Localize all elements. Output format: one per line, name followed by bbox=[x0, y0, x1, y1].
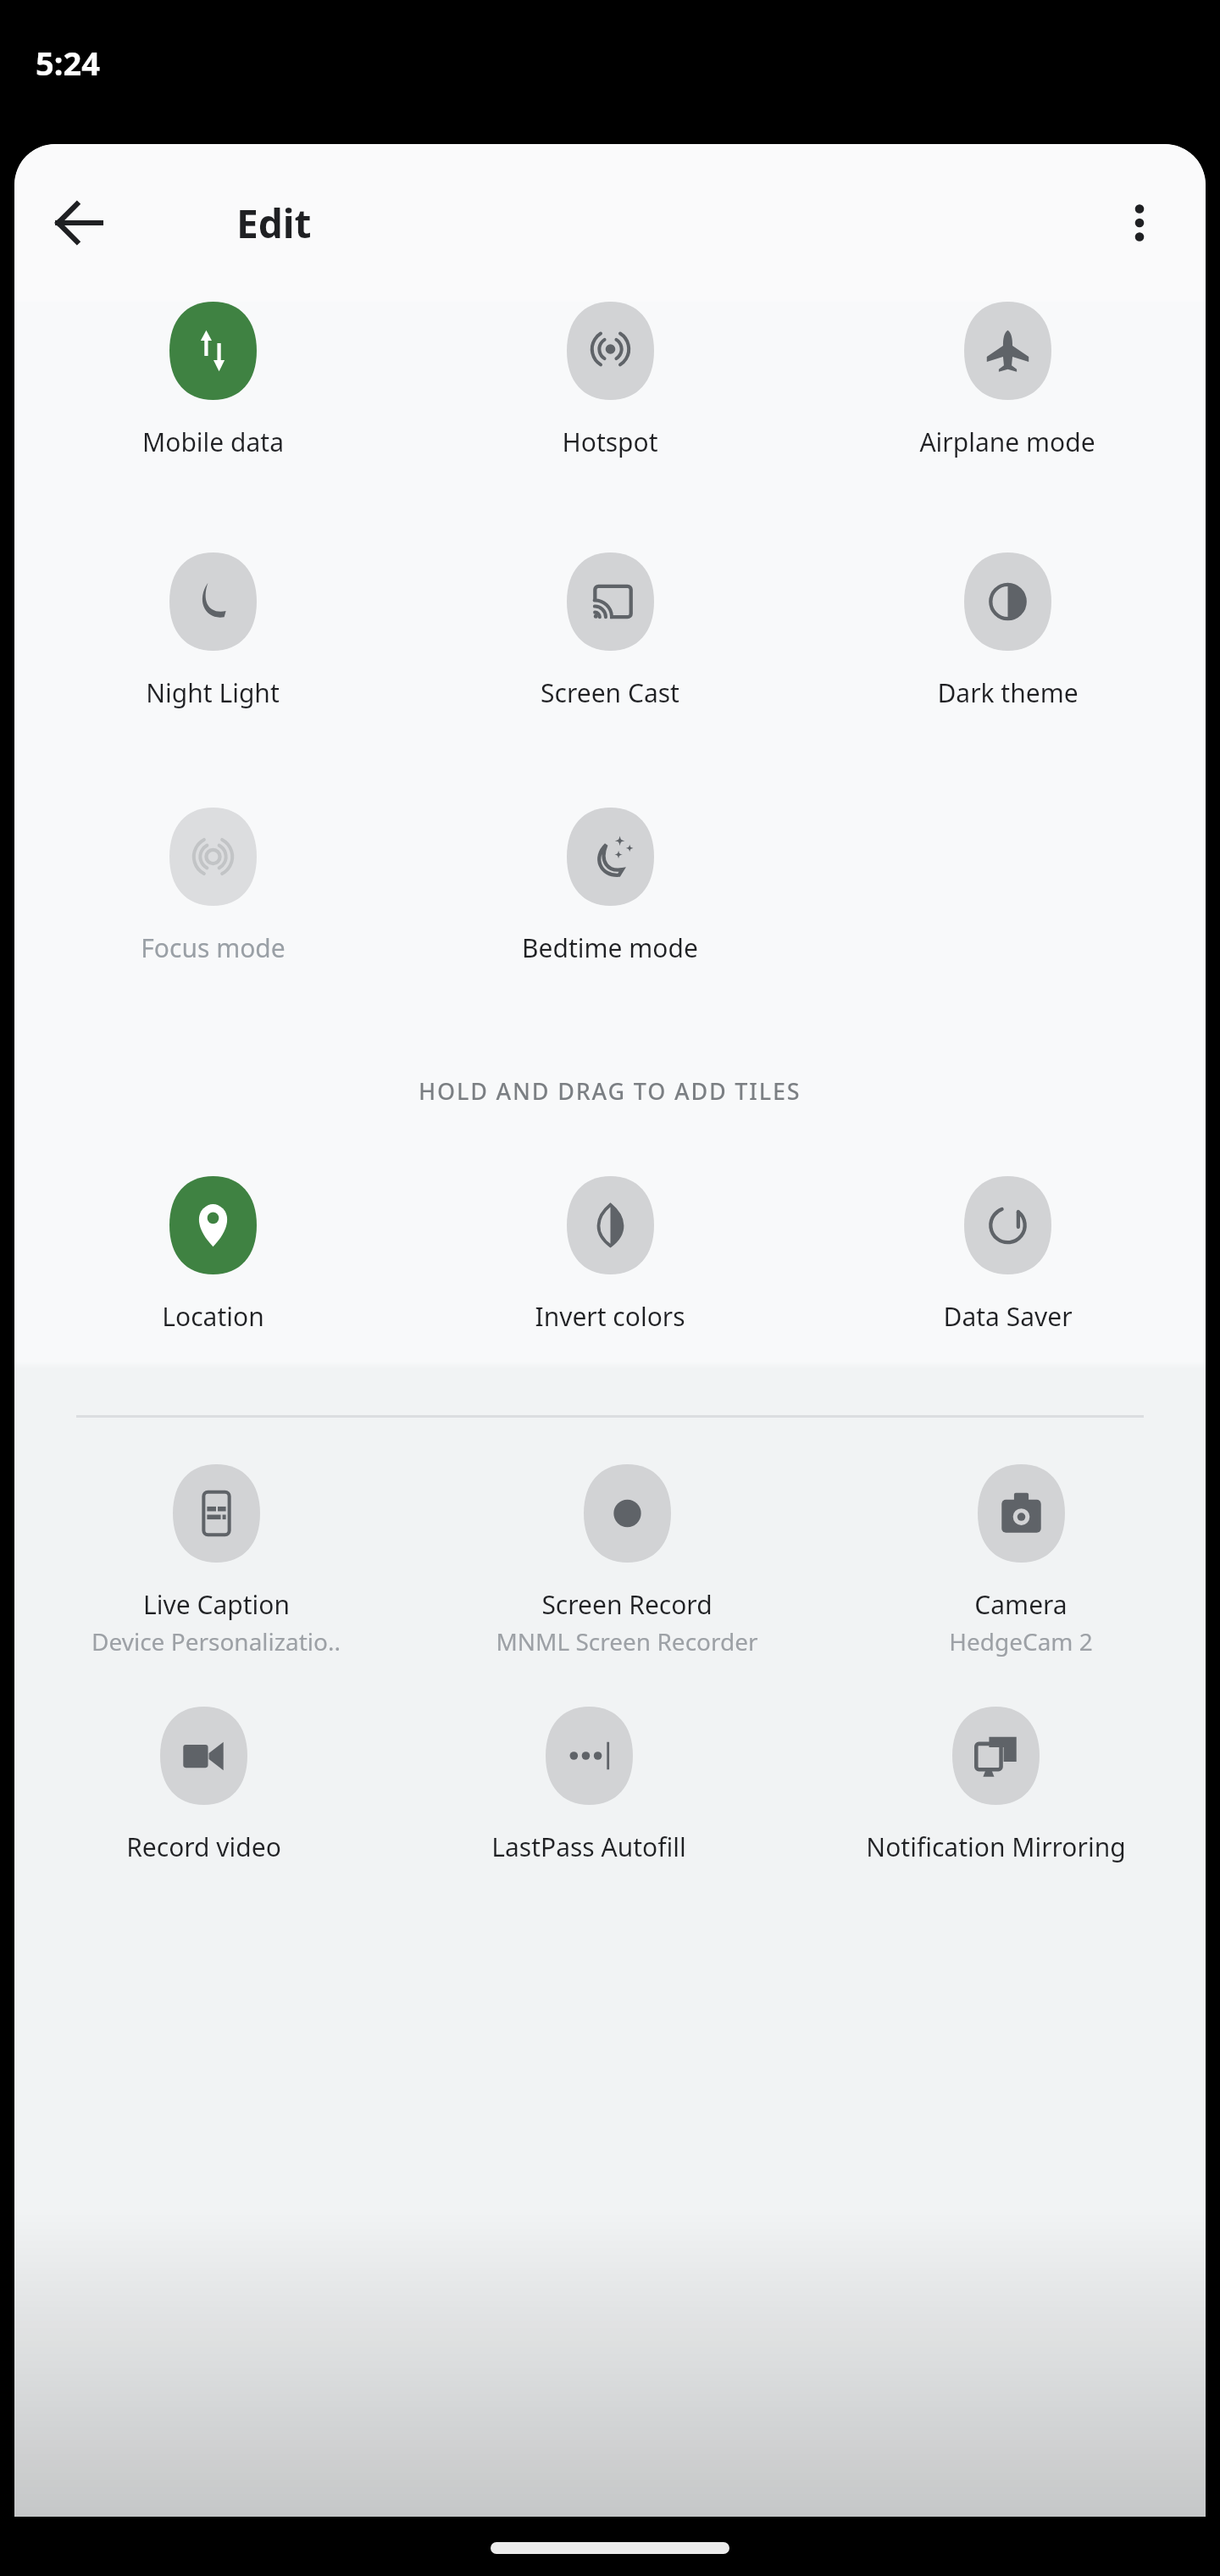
button[interactable]: LastPass Autofill bbox=[402, 1707, 775, 1864]
button[interactable]: Night Light bbox=[35, 552, 391, 710]
button[interactable]: Screen Record bbox=[432, 1464, 822, 1657]
staticText: Bedtime mode bbox=[522, 930, 698, 965]
staticText: Hotspot bbox=[562, 425, 658, 459]
staticText: Screen Record bbox=[541, 1587, 713, 1622]
button[interactable]: Focus mode bbox=[35, 808, 391, 965]
staticText: Device Personalizatio.. bbox=[91, 1625, 341, 1657]
button[interactable]: Back bbox=[33, 177, 125, 269]
staticText: Edit bbox=[236, 197, 312, 250]
staticText: Camera bbox=[974, 1587, 1067, 1622]
button[interactable]: Invert colors bbox=[432, 1176, 788, 1334]
button[interactable]: Location bbox=[35, 1176, 391, 1334]
staticText: Dark theme bbox=[937, 675, 1079, 710]
staticText: 5:24 bbox=[36, 41, 100, 85]
staticText: Notification Mirroring bbox=[866, 1829, 1126, 1864]
button[interactable]: Mobile data bbox=[35, 302, 391, 459]
staticText: HOLD AND DRAG TO ADD TILES bbox=[419, 1075, 801, 1107]
button[interactable]: Dark theme bbox=[829, 552, 1185, 710]
staticText: Live Caption bbox=[143, 1587, 290, 1622]
button[interactable]: Notification Mirroring bbox=[796, 1707, 1195, 1864]
staticText: Screen Cast bbox=[541, 675, 679, 710]
staticText: Night Light bbox=[146, 675, 280, 710]
button[interactable]: Airplane mode bbox=[829, 302, 1185, 459]
staticText: LastPass Autofill bbox=[491, 1829, 686, 1864]
staticText: Record video bbox=[126, 1829, 281, 1864]
button[interactable]: Live Caption bbox=[30, 1464, 402, 1657]
staticText: Data Saver bbox=[943, 1299, 1073, 1334]
button[interactable]: More options bbox=[1094, 177, 1185, 269]
staticText: MNML Screen Recorder bbox=[496, 1625, 758, 1657]
button[interactable]: Data Saver bbox=[829, 1176, 1185, 1334]
button[interactable]: Record video bbox=[25, 1707, 381, 1864]
staticText: Focus mode bbox=[141, 930, 286, 965]
staticText: Airplane mode bbox=[919, 425, 1095, 459]
button[interactable]: Bedtime mode bbox=[432, 808, 788, 965]
staticText: Location bbox=[162, 1299, 264, 1334]
staticText: HedgeCam 2 bbox=[949, 1625, 1093, 1657]
button[interactable]: Screen Cast bbox=[432, 552, 788, 710]
staticText: Invert colors bbox=[535, 1299, 685, 1334]
staticText: Mobile data bbox=[142, 425, 284, 459]
button[interactable]: Camera bbox=[851, 1464, 1190, 1657]
button[interactable]: Hotspot bbox=[432, 302, 788, 459]
